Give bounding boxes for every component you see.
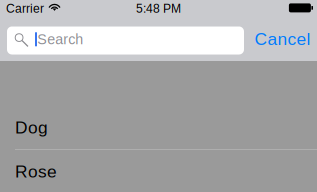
- button[interactable]: Dog: [0, 106, 317, 149]
- button[interactable]: Rose: [0, 150, 317, 192]
- staticText: Cancel: [254, 29, 310, 49]
- staticText: Carrier: [6, 2, 44, 15]
- staticText: 5:48 PM: [136, 2, 181, 15]
- staticText: Dog: [15, 118, 48, 137]
- button[interactable]: Cancel: [254, 23, 310, 57]
- staticText: Rose: [15, 162, 57, 181]
- staticText: Search: [37, 31, 83, 47]
